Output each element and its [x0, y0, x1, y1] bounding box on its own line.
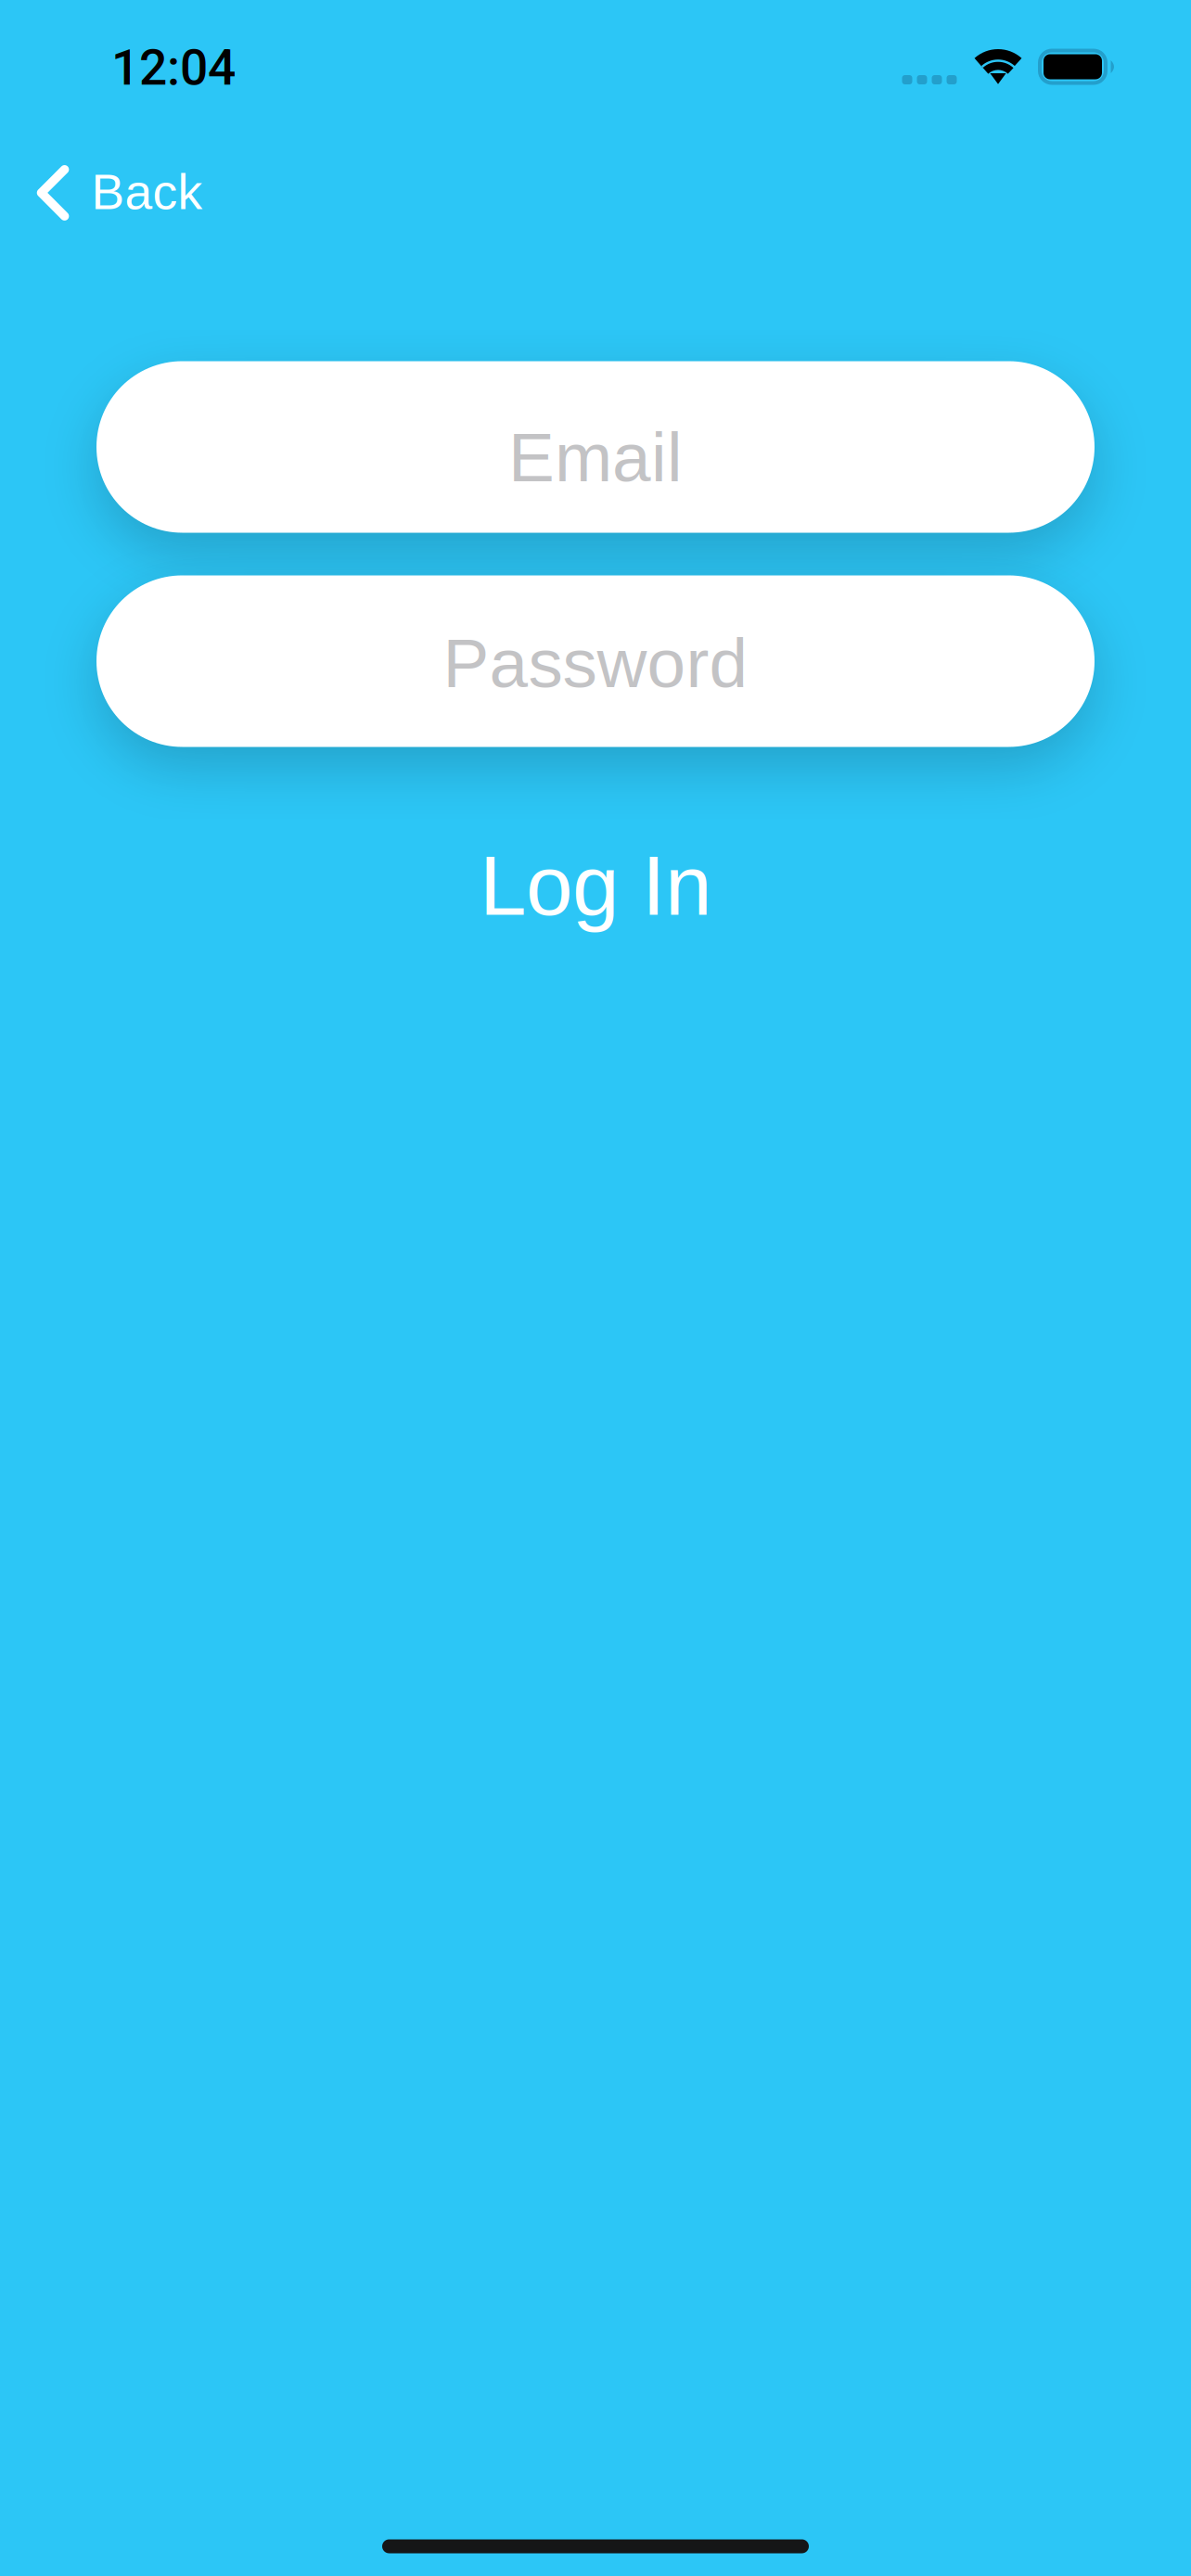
staticText: 12:04: [111, 39, 236, 97]
button[interactable]: Back: [0, 140, 231, 245]
staticText: Email: [508, 418, 683, 496]
button[interactable]: Email: [96, 361, 1095, 533]
staticText: Password: [443, 624, 748, 702]
staticText: Back: [91, 164, 203, 220]
staticText: Log In: [480, 839, 711, 933]
button[interactable]: Password: [96, 575, 1095, 747]
button[interactable]: Log In: [96, 830, 1095, 941]
